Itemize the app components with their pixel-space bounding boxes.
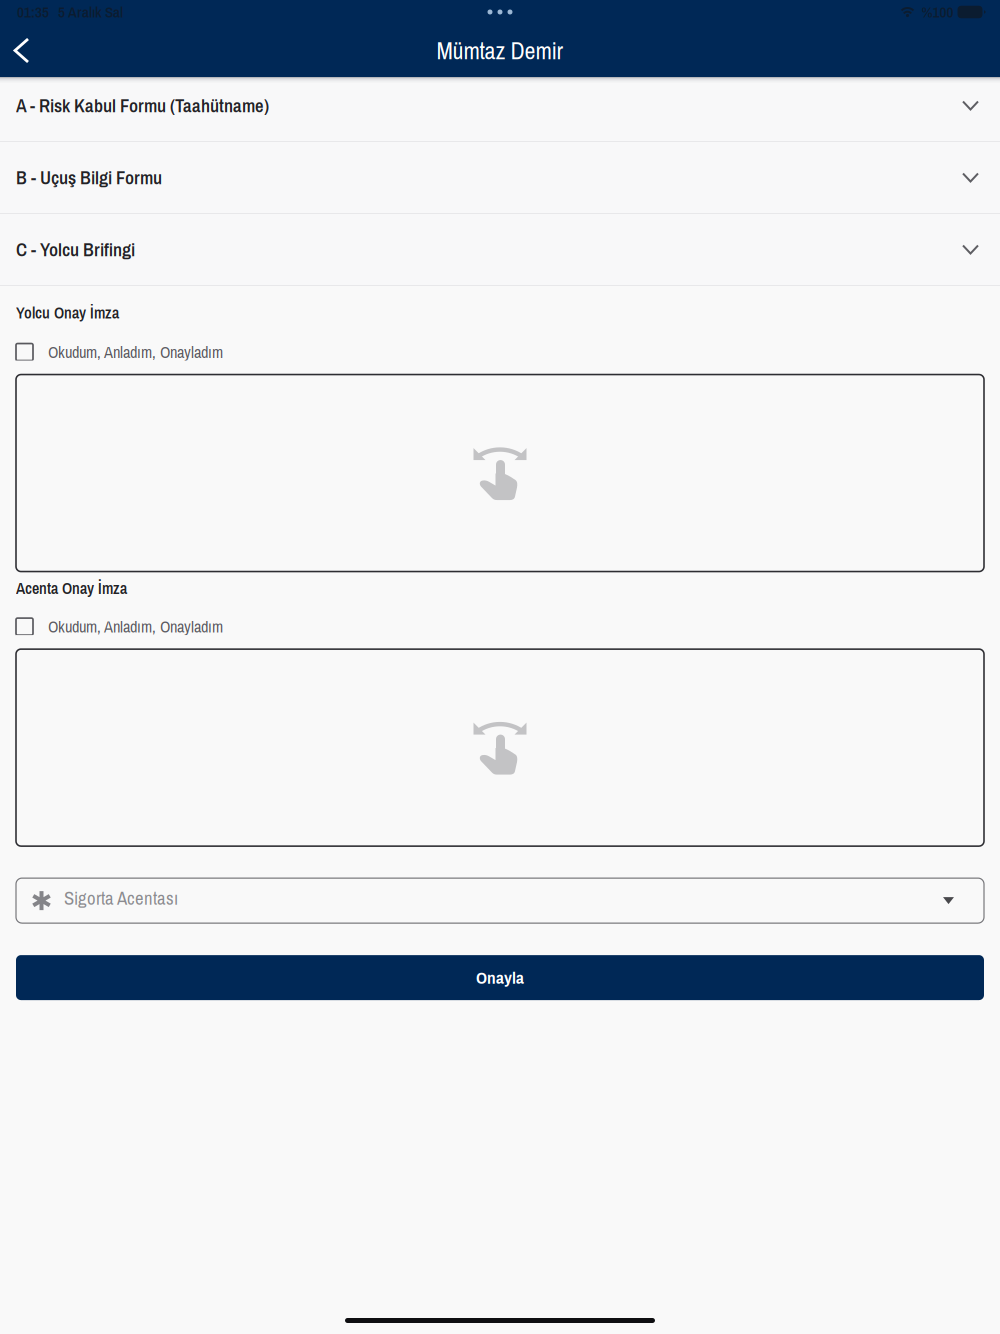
staticText: Sigorta Acentası: [64, 885, 178, 911]
staticText: 01:35: [17, 2, 49, 22]
button[interactable]: Okudum, Anladım, Onayladım: [16, 344, 984, 361]
staticText: Onayla: [476, 966, 524, 989]
staticText: 5 Aralık Sal: [58, 2, 123, 22]
staticText: %100: [921, 2, 953, 22]
staticText: B - Uçuş Bilgi Formu: [16, 165, 162, 190]
button[interactable]: Sigorta Acentası: [16, 878, 984, 923]
staticText: Okudum, Anladım, Onayladım: [48, 616, 223, 638]
staticText: A - Risk Kabul Formu (Taahütname): [16, 93, 269, 118]
staticText: Yolcu Onay İmza: [16, 302, 119, 324]
button[interactable]: C - Yolcu Brifingi: [0, 214, 1000, 285]
button[interactable]: Okudum, Anladım, Onayladım: [16, 618, 984, 635]
button[interactable]: B - Uçuş Bilgi Formu: [0, 142, 1000, 213]
staticText: C - Yolcu Brifingi: [16, 237, 135, 262]
button[interactable]: Geri: [0, 24, 48, 77]
button[interactable]: Onayla: [16, 955, 984, 1000]
button[interactable]: A - Risk Kabul Formu (Taahütname): [0, 77, 1000, 141]
staticText: Mümtaz Demir: [436, 34, 563, 67]
staticText: Okudum, Anladım, Onayladım: [48, 341, 223, 363]
staticText: Acenta Onay İmza: [16, 578, 127, 599]
